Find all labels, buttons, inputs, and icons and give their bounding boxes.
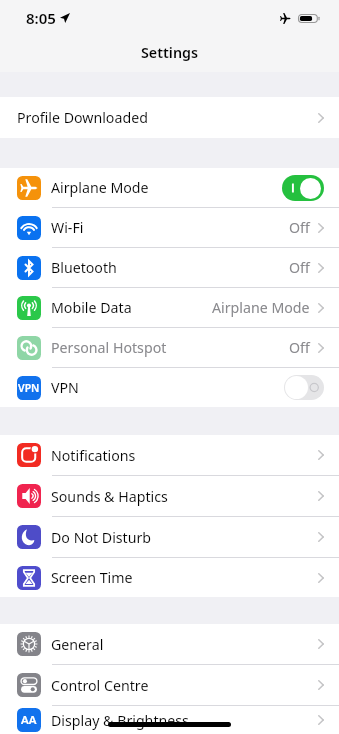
staticText: Off <box>289 258 310 277</box>
staticText: Personal Hotspot <box>51 338 167 357</box>
button[interactable]: Notifications <box>0 435 339 475</box>
button[interactable]: Personal Hotspot <box>0 328 339 367</box>
button[interactable]: VPN off <box>284 375 324 400</box>
staticText: VPN <box>18 381 40 395</box>
staticText: VPN <box>51 378 79 397</box>
staticText: Display & Brightness <box>51 711 189 730</box>
staticText: General <box>51 635 104 654</box>
staticText: Off <box>289 218 310 237</box>
staticText: Notifications <box>51 446 136 465</box>
button[interactable]: Do Not Disturb <box>0 517 339 557</box>
staticText: Control Centre <box>51 676 149 695</box>
button[interactable]: Mobile Data <box>0 288 339 327</box>
button[interactable]: VPN <box>0 368 339 407</box>
button[interactable]: General <box>0 624 339 664</box>
staticText: Airplane Mode <box>212 298 310 317</box>
button[interactable]: AA <box>0 706 339 734</box>
staticText: Wi-Fi <box>51 218 84 237</box>
button[interactable]: Bluetooth <box>0 248 339 287</box>
staticText: Sounds & Haptics <box>51 487 168 506</box>
button[interactable]: Wi-Fi <box>0 208 339 247</box>
staticText: AA <box>21 712 37 728</box>
staticText: Airplane Mode <box>51 178 149 197</box>
button[interactable]: Sounds & Haptics <box>0 476 339 516</box>
button[interactable]: Control Centre <box>0 665 339 705</box>
button[interactable]: Screen Time <box>0 558 339 597</box>
staticText: Mobile Data <box>51 298 132 317</box>
staticText: Off <box>289 338 310 357</box>
staticText: Bluetooth <box>51 258 117 277</box>
staticText: Profile Downloaded <box>17 108 148 127</box>
button[interactable]: Airplane Mode <box>0 168 339 207</box>
staticText: 8:05 <box>26 8 56 28</box>
staticText: Screen Time <box>51 568 133 587</box>
staticText: Settings <box>141 43 199 62</box>
button[interactable]: Airplane Mode on <box>282 175 324 201</box>
button[interactable]: Profile Downloaded <box>0 97 339 138</box>
staticText: Do Not Disturb <box>51 528 152 547</box>
